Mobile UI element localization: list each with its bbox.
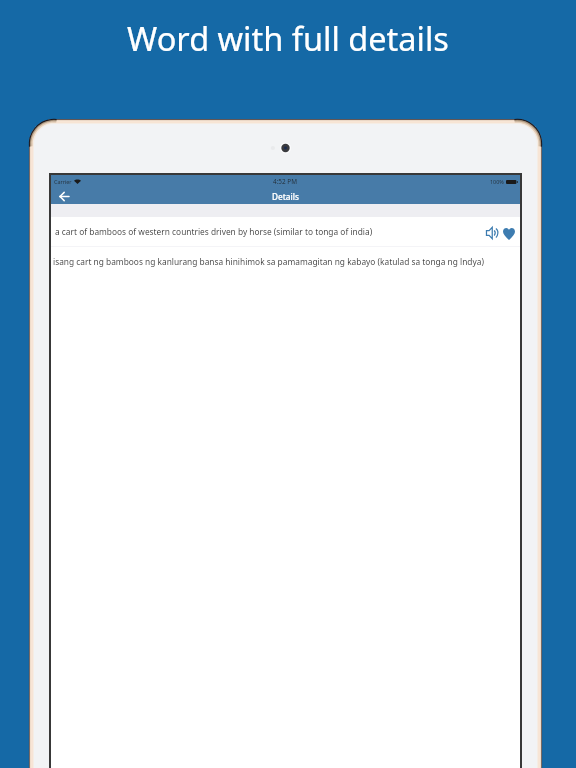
staticText: 4:52 PM	[273, 177, 298, 186]
staticText: Word with full details	[127, 16, 449, 60]
button[interactable]: Back	[54, 188, 74, 205]
button[interactable]: isang cart ng bamboos ng kanlurang bansa…	[51, 247, 520, 276]
button[interactable]: a cart of bamboos of western countries d…	[51, 217, 520, 246]
button[interactable]: Add to favourites	[501, 226, 517, 242]
staticText: Details	[272, 191, 299, 202]
button[interactable]: Play pronunciation	[484, 225, 500, 241]
staticText: isang cart ng bamboos ng kanlurang bansa…	[53, 256, 484, 267]
staticText: Carrier	[54, 178, 72, 185]
staticText: a cart of bamboos of western countries d…	[55, 226, 373, 237]
staticText: 100%	[490, 178, 504, 185]
